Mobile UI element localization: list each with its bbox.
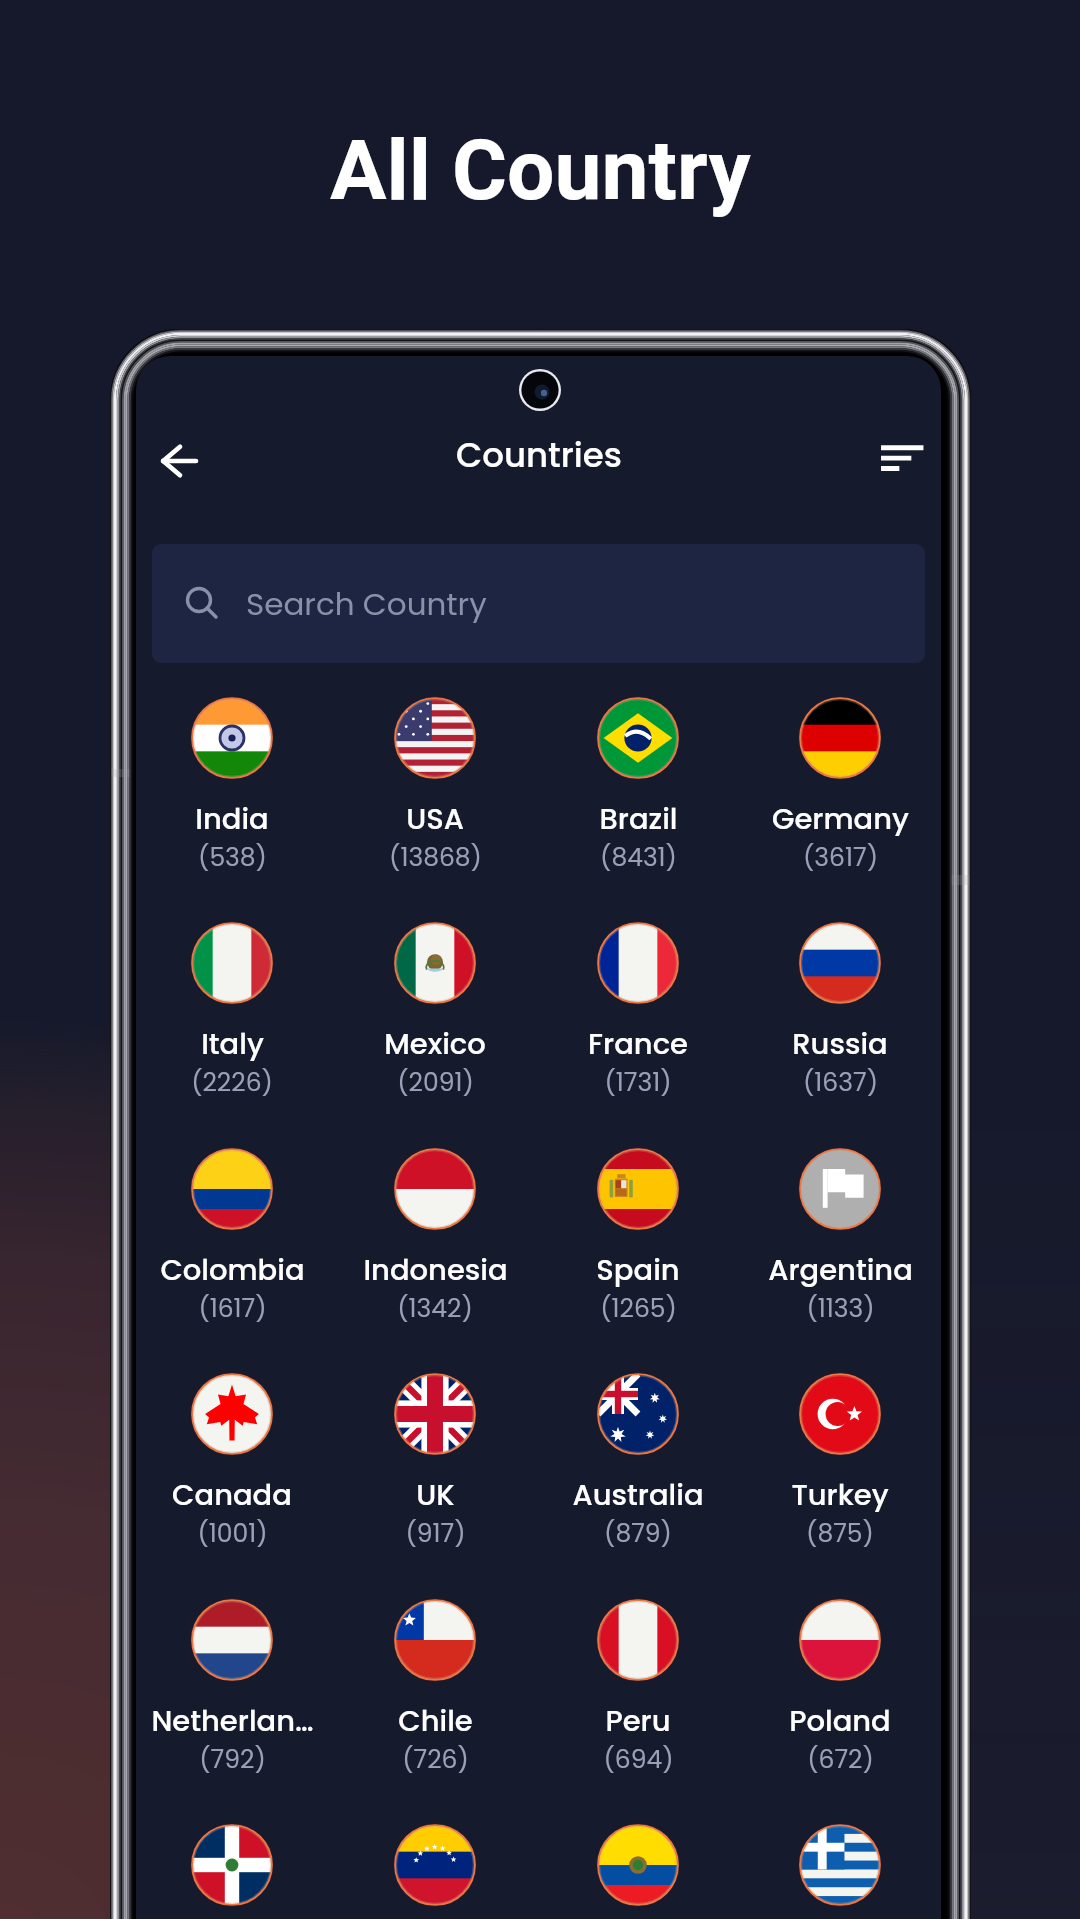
staticText: Colombia: [160, 1250, 305, 1291]
staticText: (917): [405, 1516, 466, 1551]
staticText: (879): [604, 1516, 672, 1551]
button[interactable]: France: [537, 922, 739, 1100]
button[interactable]: Back: [144, 429, 216, 493]
button[interactable]: Netherlan…: [136, 1599, 333, 1777]
staticText: Search Country: [246, 582, 487, 625]
staticText: (694): [603, 1742, 674, 1777]
staticText: (538): [198, 840, 267, 875]
staticText: (1617): [198, 1291, 267, 1326]
staticText: Chile: [398, 1701, 473, 1742]
button[interactable]: USA: [334, 697, 536, 875]
staticText: (1731): [604, 1065, 672, 1100]
staticText: (1001): [197, 1516, 268, 1551]
button[interactable]: Italy: [136, 922, 333, 1100]
staticText: (3617): [803, 840, 878, 875]
staticText: Spain: [596, 1250, 680, 1291]
button[interactable]: Turkey: [739, 1373, 941, 1551]
button[interactable]: Peru: [537, 1599, 739, 1777]
button[interactable]: Russia: [739, 922, 941, 1100]
staticText: Australia: [572, 1475, 704, 1516]
staticText: (672): [807, 1742, 874, 1777]
button[interactable]: [136, 1824, 333, 1919]
button[interactable]: [739, 1824, 941, 1919]
button[interactable]: Sort: [867, 429, 939, 493]
staticText: Italy: [201, 1024, 264, 1065]
button[interactable]: Indonesia: [334, 1148, 536, 1326]
staticText: (8431): [600, 840, 677, 875]
staticText: (2226): [191, 1065, 273, 1100]
staticText: Countries: [456, 431, 622, 479]
button[interactable]: Brazil: [537, 697, 739, 875]
staticText: (1637): [803, 1065, 878, 1100]
staticText: Indonesia: [363, 1250, 508, 1291]
staticText: Canada: [172, 1475, 292, 1516]
staticText: Argentina: [768, 1250, 913, 1291]
staticText: (2091): [397, 1065, 474, 1100]
staticText: Turkey: [791, 1475, 889, 1516]
staticText: (13868): [389, 840, 482, 875]
staticText: (726): [402, 1742, 469, 1777]
button[interactable]: Chile: [334, 1599, 536, 1777]
button[interactable]: Colombia: [136, 1148, 333, 1326]
staticText: All Country: [330, 121, 751, 219]
button[interactable]: India: [136, 697, 333, 875]
staticText: (792): [199, 1742, 266, 1777]
staticText: Mexico: [384, 1024, 486, 1065]
staticText: Netherlan…: [151, 1701, 314, 1742]
button[interactable]: Search Country: [152, 544, 925, 663]
button[interactable]: [334, 1824, 536, 1919]
staticText: Brazil: [599, 799, 678, 840]
button[interactable]: Spain: [537, 1148, 739, 1326]
staticText: (1342): [397, 1291, 473, 1326]
button[interactable]: Australia: [537, 1373, 739, 1551]
staticText: (1133): [806, 1291, 875, 1326]
staticText: Germany: [772, 799, 909, 840]
button[interactable]: [537, 1824, 739, 1919]
staticText: (1265): [600, 1291, 677, 1326]
button[interactable]: Poland: [739, 1599, 941, 1777]
staticText: Russia: [792, 1024, 888, 1065]
staticText: (875): [806, 1516, 874, 1551]
staticText: Peru: [605, 1701, 671, 1742]
staticText: Poland: [789, 1701, 891, 1742]
button[interactable]: Germany: [739, 697, 941, 875]
staticText: India: [195, 799, 269, 840]
button[interactable]: Mexico: [334, 922, 536, 1100]
button[interactable]: UK: [334, 1373, 536, 1551]
staticText: USA: [406, 799, 464, 840]
staticText: UK: [416, 1475, 455, 1516]
staticText: France: [588, 1024, 688, 1065]
button[interactable]: Canada: [136, 1373, 333, 1551]
button[interactable]: Argentina: [739, 1148, 941, 1326]
